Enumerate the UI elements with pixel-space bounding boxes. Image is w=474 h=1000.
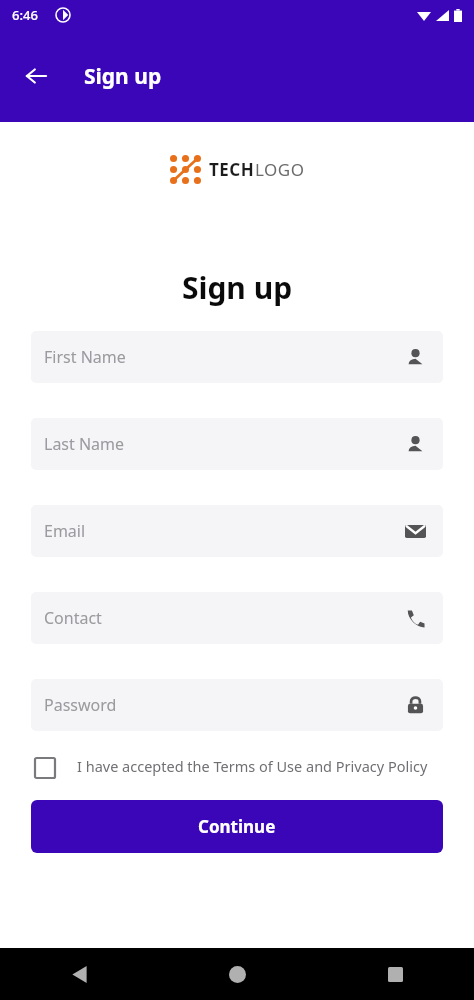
button[interactable]: Email: [31, 505, 443, 557]
button[interactable]: Last Name: [31, 418, 443, 470]
staticText: LOGO: [255, 158, 305, 181]
staticText: Sign up: [84, 62, 162, 91]
staticText: I have accepted the Terms of Use and Pri…: [77, 756, 428, 776]
button[interactable]: Back: [12, 52, 60, 100]
staticText: Contact: [44, 607, 405, 629]
button[interactable]: Recent apps: [316, 948, 474, 1000]
staticText: Sign up: [0, 267, 474, 308]
button[interactable]: Contact: [31, 592, 443, 644]
button[interactable]: Back: [0, 948, 158, 1000]
staticText: Last Name: [44, 433, 405, 455]
button[interactable]: Continue: [31, 800, 443, 853]
button[interactable]: I have accepted the Terms of Use and Pri…: [31, 752, 443, 782]
staticText: 6:46: [12, 6, 38, 24]
staticText: Password: [44, 694, 405, 716]
button[interactable]: Password: [31, 679, 443, 731]
staticText: First Name: [44, 346, 405, 368]
staticText: Email: [44, 520, 405, 542]
staticText: Continue: [198, 815, 276, 838]
button[interactable]: First Name: [31, 331, 443, 383]
button[interactable]: Home: [158, 948, 316, 1000]
staticText: TECH: [209, 158, 255, 181]
